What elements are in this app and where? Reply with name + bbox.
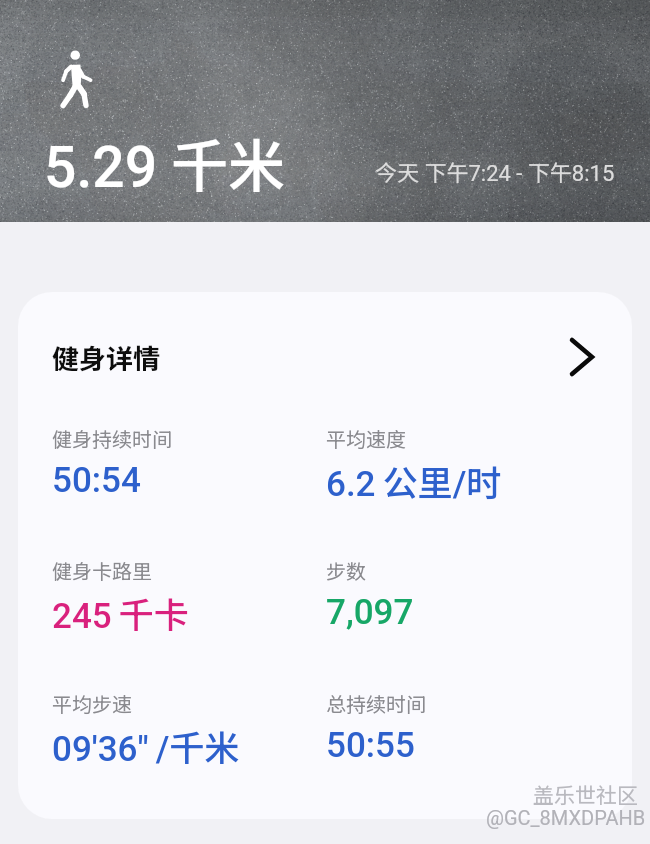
other: Open workout details	[570, 338, 594, 376]
button[interactable]: 健身详情	[18, 292, 632, 422]
staticText: 平均速度	[326, 424, 406, 453]
staticText: 今天 下午7:24 - 下午8:15	[375, 155, 615, 187]
staticText: 5.29 千米	[44, 121, 286, 204]
staticText: 健身详情	[52, 338, 160, 377]
button[interactable]: 平均步速	[52, 690, 304, 800]
staticText: 平均步速	[52, 689, 132, 718]
button[interactable]: 健身持续时间	[52, 425, 304, 535]
staticText: 50:55	[326, 725, 415, 766]
staticText: 健身持续时间	[52, 424, 172, 453]
staticText: 09'36" /千米	[52, 720, 240, 771]
other: Walking workout	[55, 48, 100, 110]
staticText: 盖乐世社区	[533, 779, 638, 809]
staticText: 健身卡路里	[52, 556, 152, 585]
staticText: 总持续时间	[326, 689, 426, 718]
button[interactable]: 健身卡路里	[52, 557, 304, 667]
staticText: 6.2 公里/时	[326, 455, 502, 506]
staticText: @GC_8MXDPAHB	[486, 806, 646, 829]
staticText: 步数	[326, 556, 366, 585]
button[interactable]: 步数	[326, 557, 578, 667]
staticText: 245 千卡	[52, 587, 189, 638]
staticText: 7,097	[326, 592, 414, 633]
staticText: 50:54	[52, 460, 141, 501]
button[interactable]: 总持续时间	[326, 690, 578, 800]
button[interactable]: 平均速度	[326, 425, 578, 535]
